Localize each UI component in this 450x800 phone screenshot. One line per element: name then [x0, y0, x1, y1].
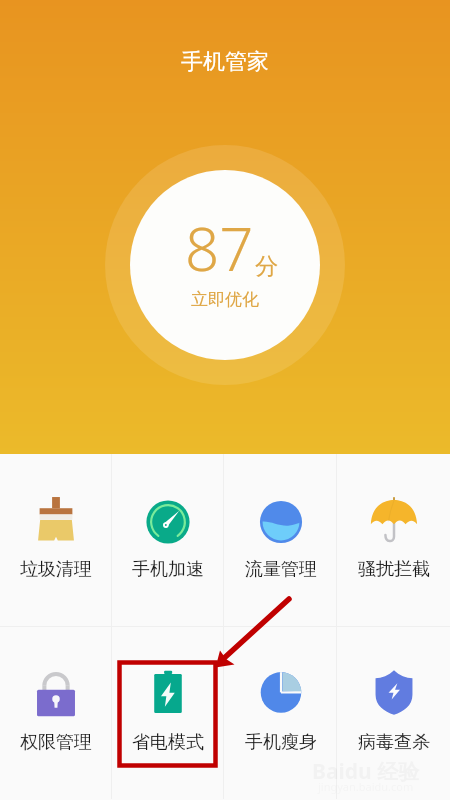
- staticText: 流量管理: [245, 558, 317, 581]
- staticText: 87: [185, 207, 254, 289]
- button[interactable]: 省电模式: [112, 627, 224, 799]
- staticText: 立即优化: [191, 289, 259, 310]
- staticText: 手机加速: [132, 558, 204, 581]
- staticText: 手机瘦身: [245, 731, 317, 754]
- staticText: 骚扰拦截: [358, 558, 430, 581]
- button[interactable]: 87: [105, 145, 345, 385]
- staticText: 手机管家: [181, 48, 269, 76]
- staticText: 病毒查杀: [358, 731, 430, 754]
- button[interactable]: 垃圾清理: [0, 454, 112, 626]
- staticText: 垃圾清理: [20, 558, 92, 581]
- button[interactable]: 手机瘦身: [224, 627, 337, 799]
- button[interactable]: 骚扰拦截: [337, 454, 450, 626]
- button[interactable]: 病毒查杀: [337, 627, 450, 799]
- button[interactable]: 权限管理: [0, 627, 112, 799]
- staticText: 省电模式: [132, 731, 204, 754]
- staticText: Baidu 经验: [312, 757, 420, 786]
- button[interactable]: 手机加速: [112, 454, 224, 626]
- staticText: 分: [255, 252, 278, 281]
- button[interactable]: 流量管理: [224, 454, 337, 626]
- staticText: 权限管理: [20, 731, 92, 754]
